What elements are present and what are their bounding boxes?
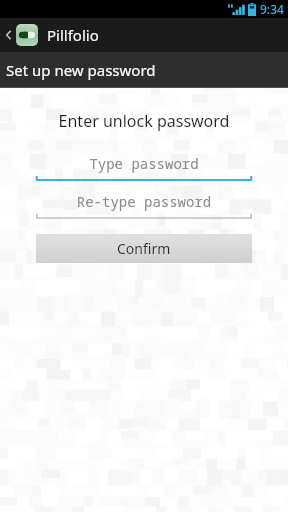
staticText: Re-type password xyxy=(36,192,252,211)
staticText: Type password xyxy=(36,154,252,173)
staticText: Confirm xyxy=(117,239,171,258)
button[interactable]: Confirm xyxy=(36,234,252,263)
staticText: Enter unlock password xyxy=(0,110,288,132)
staticText: Set up new password xyxy=(6,60,156,80)
button[interactable]: Up, Pillfolio xyxy=(0,18,288,52)
button[interactable]: Type password xyxy=(36,154,252,182)
button[interactable]: Re-type password xyxy=(36,192,252,220)
staticText: 9:34 xyxy=(260,1,284,17)
staticText: Pillfolio xyxy=(47,25,99,45)
